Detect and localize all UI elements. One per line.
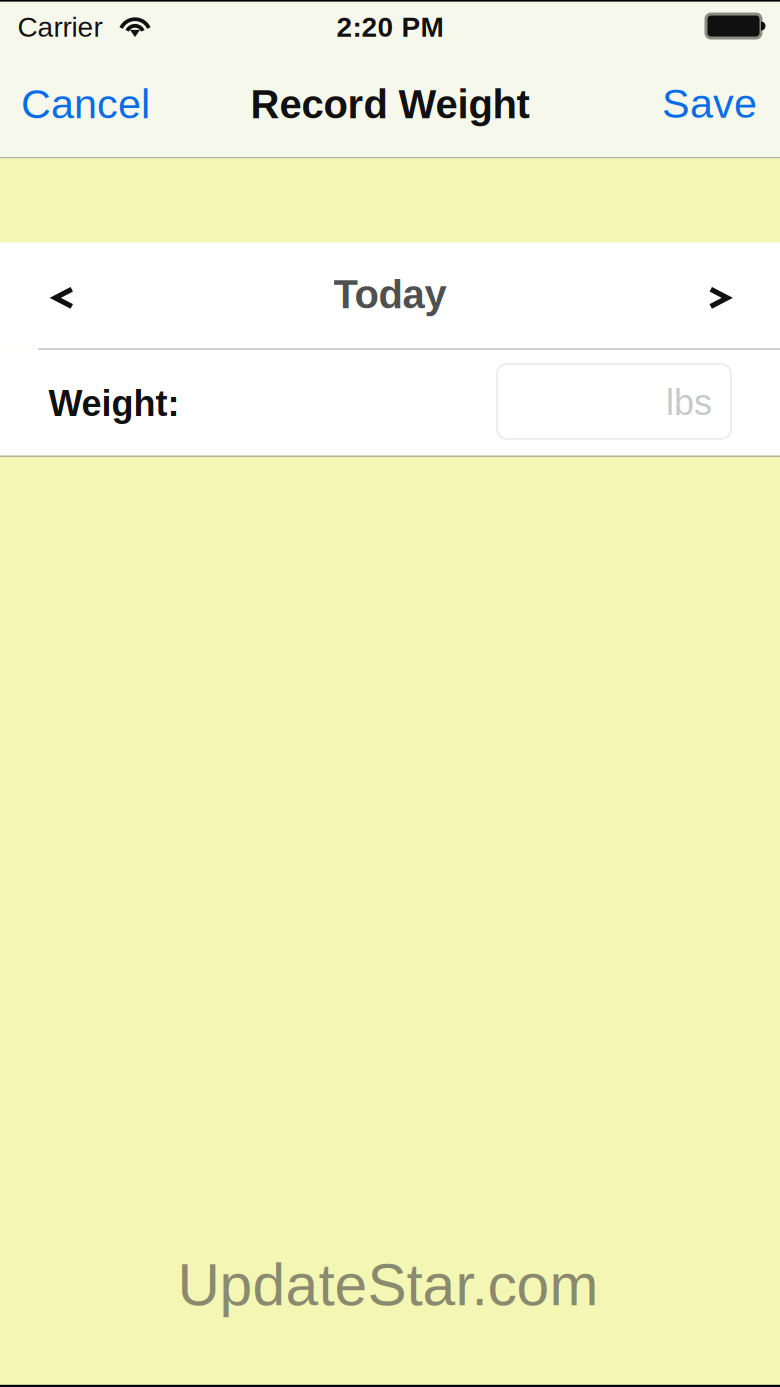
staticText: Carrier	[17, 11, 102, 43]
staticText: Weight:	[48, 383, 179, 424]
staticText: lbs	[666, 382, 712, 423]
button[interactable]: Previous day	[1, 245, 125, 350]
staticText: UpdateStar.com	[177, 1252, 598, 1318]
staticText: Record Weight	[250, 82, 529, 127]
button[interactable]: Weight in pounds	[497, 364, 731, 439]
staticText: Save	[662, 80, 757, 127]
staticText: Today	[333, 272, 446, 317]
staticText: Cancel	[21, 81, 150, 127]
button[interactable]: Next day	[657, 245, 780, 350]
button[interactable]: Save	[621, 56, 780, 151]
staticText: 2:20 PM	[336, 11, 443, 43]
button[interactable]: Cancel	[0, 56, 191, 151]
